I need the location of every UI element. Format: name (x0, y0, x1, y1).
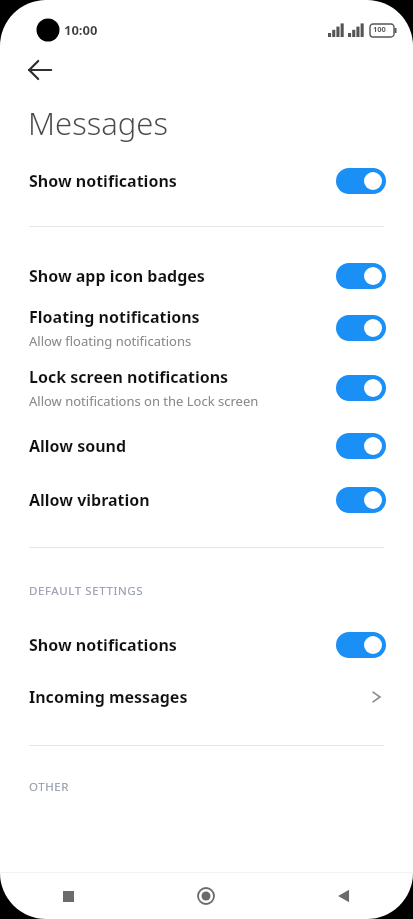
button[interactable]: Toggle (336, 168, 386, 194)
button[interactable]: Back (275, 873, 413, 919)
staticText: DEFAULT SETTINGS (29, 583, 144, 599)
button[interactable]: Incoming messages (0, 668, 413, 726)
staticText: Messages (28, 102, 168, 144)
button[interactable]: Toggle (336, 433, 386, 459)
button[interactable]: Toggle (336, 375, 386, 401)
button[interactable]: Recents (0, 873, 137, 919)
staticText: Show app icon badges (29, 265, 205, 287)
staticText: Lock screen notifications (29, 366, 229, 388)
button[interactable]: Back (22, 50, 62, 90)
button[interactable]: Toggle (336, 315, 386, 341)
staticText: Show notifications (29, 170, 177, 192)
staticText: OTHER (29, 779, 70, 795)
staticText: Allow notifications on the Lock screen (29, 392, 259, 410)
staticText: Allow floating notifications (29, 332, 192, 350)
button[interactable]: Lock screen notifications (0, 358, 413, 418)
button[interactable]: Floating notifications (0, 298, 413, 358)
button[interactable]: Toggle (336, 632, 386, 658)
button[interactable]: Toggle (336, 263, 386, 289)
button[interactable]: Allow vibration (0, 474, 413, 526)
other: Open (366, 687, 386, 707)
staticText: Floating notifications (29, 306, 200, 328)
staticText: 100 (373, 24, 386, 34)
staticText: Incoming messages (29, 686, 188, 708)
button[interactable]: Show notifications (0, 622, 413, 668)
button[interactable]: Toggle (336, 487, 386, 513)
staticText: Show notifications (29, 634, 177, 656)
button[interactable]: Home (137, 873, 275, 919)
staticText: 10:00 (64, 21, 98, 39)
button[interactable]: Show app icon badges (0, 254, 413, 298)
staticText: Allow vibration (29, 489, 150, 511)
button[interactable]: Allow sound (0, 418, 413, 474)
button[interactable]: Show notifications (0, 158, 413, 204)
staticText: Allow sound (29, 435, 127, 457)
